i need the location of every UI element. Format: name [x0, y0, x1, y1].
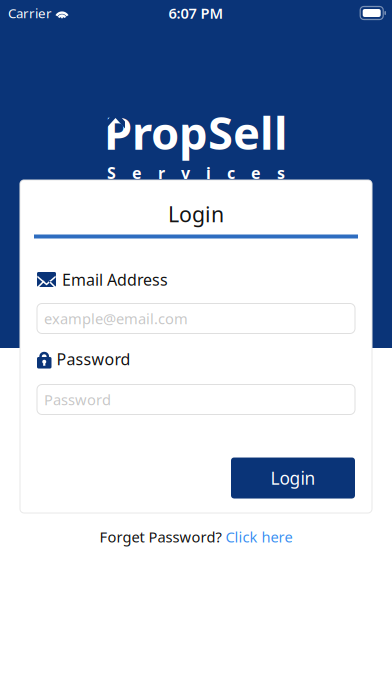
- staticText: example@email.com: [44, 309, 188, 328]
- staticText: Password: [44, 390, 111, 409]
- staticText: Login: [168, 200, 224, 228]
- staticText: Email Address: [62, 269, 168, 290]
- staticText: Forget Password?: [99, 527, 221, 546]
- staticText: Carrier: [8, 4, 52, 22]
- button[interactable]: Click here: [225, 527, 292, 546]
- staticText: 6:07 PM: [168, 3, 223, 23]
- staticText: Login: [270, 466, 315, 489]
- button[interactable]: Login: [231, 457, 355, 498]
- staticText: Click here: [225, 527, 292, 546]
- staticText: PropSell: [104, 102, 288, 162]
- staticText: Password: [56, 348, 130, 370]
- staticText: Services: [107, 162, 285, 183]
